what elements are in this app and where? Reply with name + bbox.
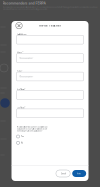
- staticText: Cancel: [61, 172, 66, 175]
- staticText: Recommenders and FERPA: [2, 1, 45, 5]
- staticText: - Choose an option -: [18, 57, 33, 59]
- staticText: Email Address: [16, 33, 26, 35]
- staticText: Prefix *: [16, 70, 22, 72]
- staticText: Invite: [77, 172, 81, 175]
- staticText: No: [21, 142, 23, 144]
- staticText: Invite Teacher: [39, 24, 61, 27]
- button[interactable]: Close: [15, 22, 23, 30]
- button[interactable]: No: [16, 140, 83, 146]
- staticText: Recommenders are people who will submit …: [2, 6, 97, 10]
- button[interactable]: Invite: [72, 170, 86, 177]
- button[interactable]: Yes: [16, 133, 83, 140]
- staticText: Yes: [21, 135, 24, 137]
- staticText: Would you like this teacher to complete …: [16, 126, 47, 132]
- staticText: - Choose an option -: [18, 75, 33, 78]
- button[interactable]: Cancel: [56, 170, 70, 177]
- staticText: Subject *: [16, 52, 23, 54]
- staticText: Last Name *: [16, 107, 25, 109]
- staticText: First Name *: [16, 88, 25, 90]
